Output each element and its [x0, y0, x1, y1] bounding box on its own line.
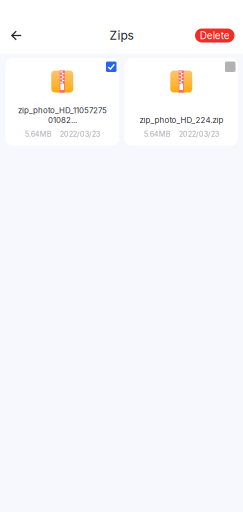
staticText: 2022/03/23: [179, 130, 219, 138]
staticText: Zips: [109, 28, 133, 43]
staticText: 5.64MB: [144, 130, 171, 138]
button[interactable]: Delete: [195, 28, 234, 42]
button[interactable]: zip_photo_HD_1105727501082...: [5, 58, 119, 145]
staticText: zip_photo_HD_1105727501082...: [18, 106, 107, 125]
staticText: 5.64MB: [25, 130, 52, 138]
staticText: Delete: [200, 29, 230, 42]
button[interactable]: Back: [0, 22, 34, 48]
staticText: zip_photo_HD_224.zip: [139, 115, 223, 125]
staticText: 2022/03/23: [60, 130, 100, 138]
button[interactable]: zip_photo_HD_224.zip: [124, 58, 238, 145]
